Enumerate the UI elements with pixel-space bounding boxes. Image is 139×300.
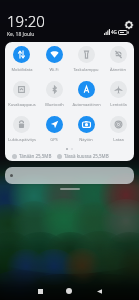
staticText: Bluetooth [45, 102, 64, 107]
staticText: Automaattinen [72, 102, 101, 107]
staticText: 4G [111, 29, 117, 35]
staticText: Taskulamppu [73, 67, 99, 72]
staticText: Tässä kuussa 25,5MB [64, 153, 109, 159]
staticText: Kuvakaappaus [8, 102, 36, 107]
button[interactable]: Näytön tallennus [70, 116, 102, 142]
button[interactable]: GPS [38, 116, 70, 142]
button[interactable]: Lataa [102, 116, 134, 142]
button[interactable]: Taskulamppu [70, 46, 102, 72]
button[interactable]: Automaattinen [70, 81, 102, 107]
staticText: Lentotila [110, 102, 127, 107]
staticText: GPS [50, 137, 58, 142]
button[interactable] [5, 167, 134, 184]
staticText: 19:20 [7, 11, 45, 31]
staticText: Näytön tallennus [70, 137, 102, 142]
button[interactable]: Bluetooth [38, 81, 70, 107]
button[interactable]: Back [91, 283, 107, 299]
staticText: Lataa [113, 137, 124, 142]
button[interactable]: Lentotila [102, 81, 134, 107]
button[interactable]: Kuvakaappaus [5, 81, 38, 107]
button[interactable]: Settings [123, 19, 135, 31]
staticText: Ke, 18 Joulu [7, 31, 35, 38]
button[interactable]: Äänetön [102, 46, 134, 72]
button[interactable]: Recents [32, 283, 48, 299]
button[interactable]: Wi-Fi [38, 46, 70, 72]
staticText: Lukituspäivitys [8, 137, 36, 142]
button[interactable]: Lukituspäivitys [5, 116, 38, 142]
button[interactable]: Mobiilidata [5, 46, 38, 72]
staticText: Mobiilidata [11, 67, 33, 72]
button[interactable]: Home [61, 283, 77, 299]
staticText: Tänään 25,5MB [19, 153, 52, 159]
staticText: Äänetön [110, 67, 126, 72]
staticText: Wi-Fi [49, 67, 59, 72]
